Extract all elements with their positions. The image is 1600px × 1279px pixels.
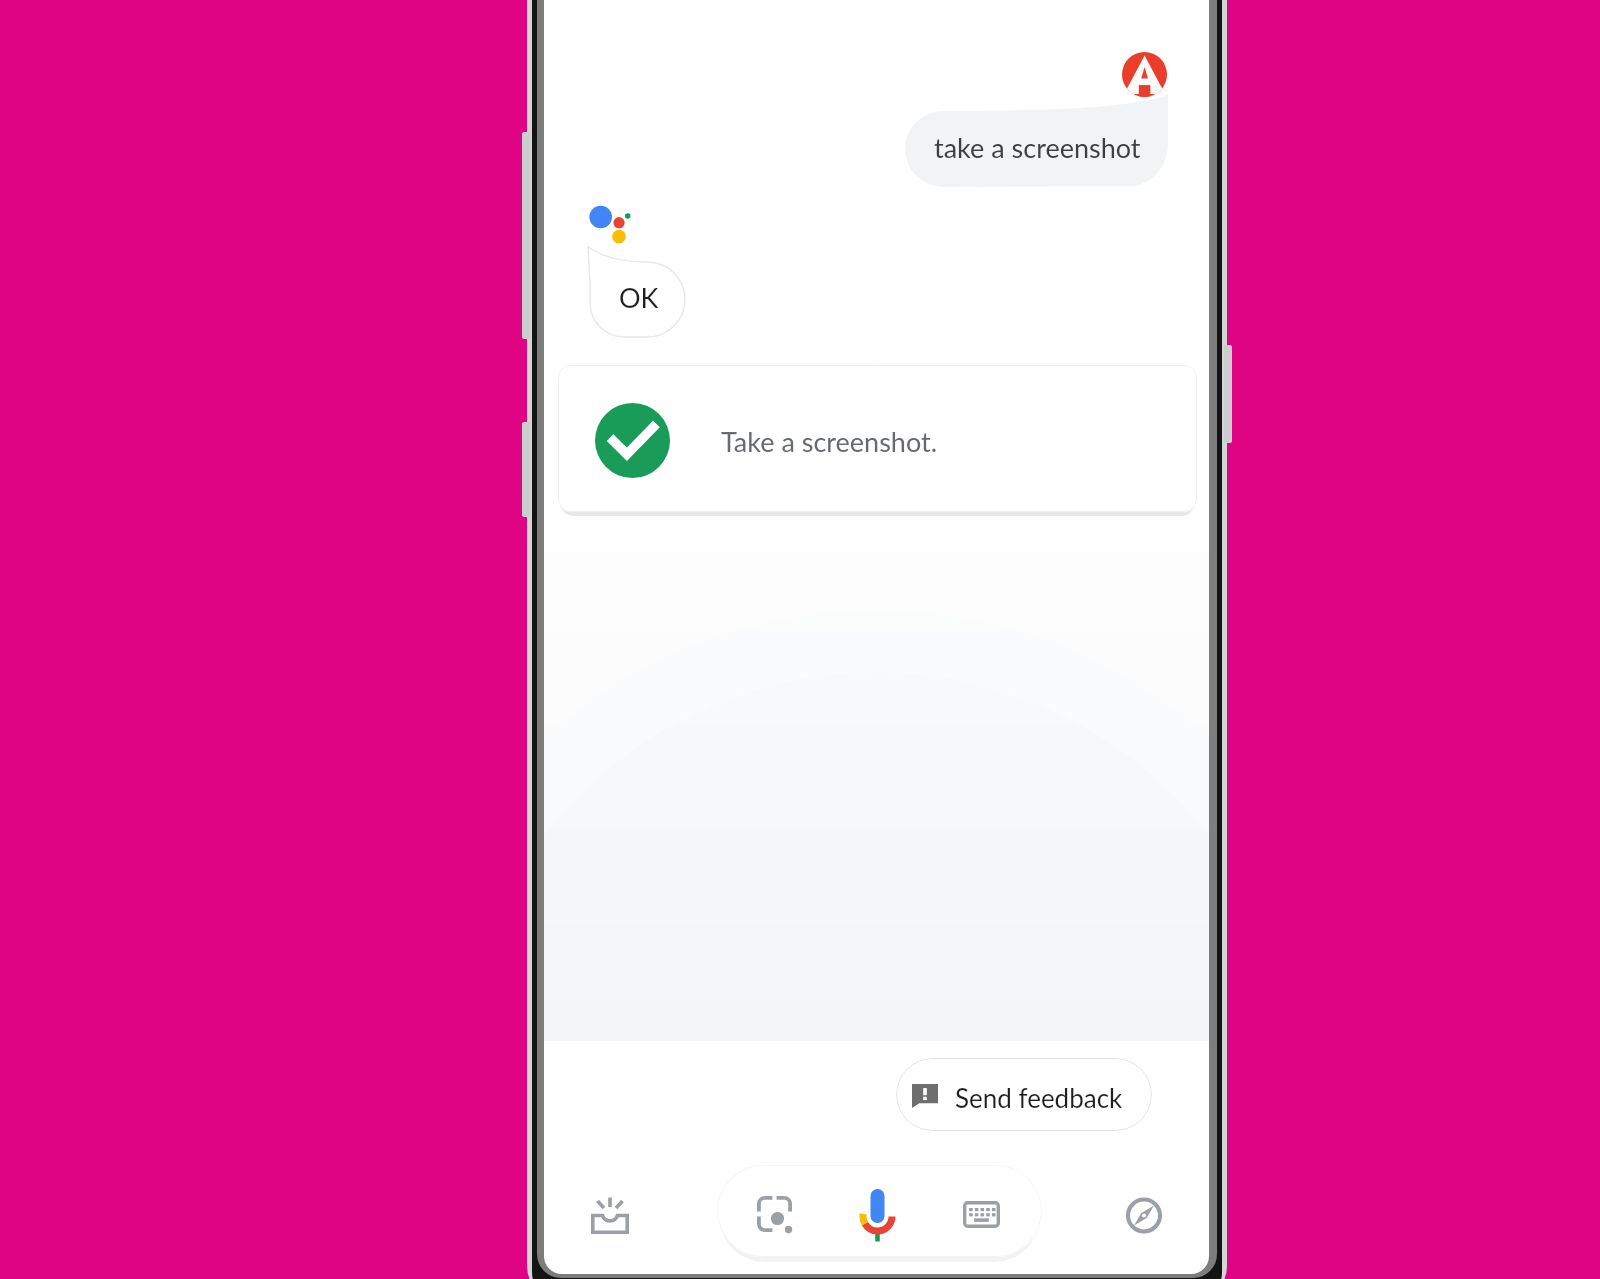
staticText: Send feedback	[955, 1082, 1123, 1113]
button[interactable]: Account	[1122, 52, 1167, 97]
button[interactable]: Keyboard	[945, 1184, 1018, 1244]
button[interactable]: Send feedback	[896, 1058, 1152, 1131]
button[interactable]: Voice search	[842, 1185, 914, 1245]
button[interactable]: Google Lens	[741, 1184, 807, 1244]
staticText: Take a screenshot.	[721, 425, 938, 457]
button[interactable]: Explore	[1117, 1188, 1171, 1242]
button[interactable]: take a screenshot	[905, 95, 1168, 187]
staticText: take a screenshot	[934, 131, 1141, 163]
button[interactable]: Take a screenshot.	[558, 365, 1197, 512]
staticText: OK	[619, 281, 659, 313]
button[interactable]: Snapshot	[583, 1188, 637, 1242]
